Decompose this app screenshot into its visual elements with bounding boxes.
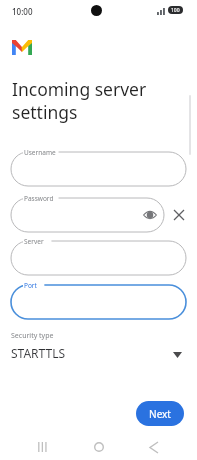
button[interactable]: Back: [141, 434, 167, 460]
button[interactable]: Show password: [143, 208, 157, 222]
staticText: Next: [149, 407, 171, 421]
staticText: Incoming server settings: [12, 77, 147, 124]
button[interactable]: Security type: [11, 331, 186, 367]
staticText: 100: [171, 7, 180, 14]
button[interactable]: Server: [11, 241, 186, 275]
button[interactable]: Password: [11, 198, 164, 232]
button[interactable]: Next: [136, 401, 184, 426]
button[interactable]: Recent apps: [30, 434, 56, 460]
staticText: 10:00: [12, 6, 33, 17]
staticText: Server: [24, 237, 44, 246]
staticText: Port: [24, 281, 37, 290]
staticText: STARTTLS: [11, 345, 66, 361]
button[interactable]: Username: [11, 152, 186, 186]
button[interactable]: Port: [11, 285, 186, 319]
staticText: Username: [24, 148, 56, 157]
staticText: Security type: [11, 331, 54, 341]
button[interactable]: Home: [86, 434, 112, 460]
staticText: Password: [24, 194, 54, 203]
button[interactable]: Clear password: [171, 207, 187, 223]
